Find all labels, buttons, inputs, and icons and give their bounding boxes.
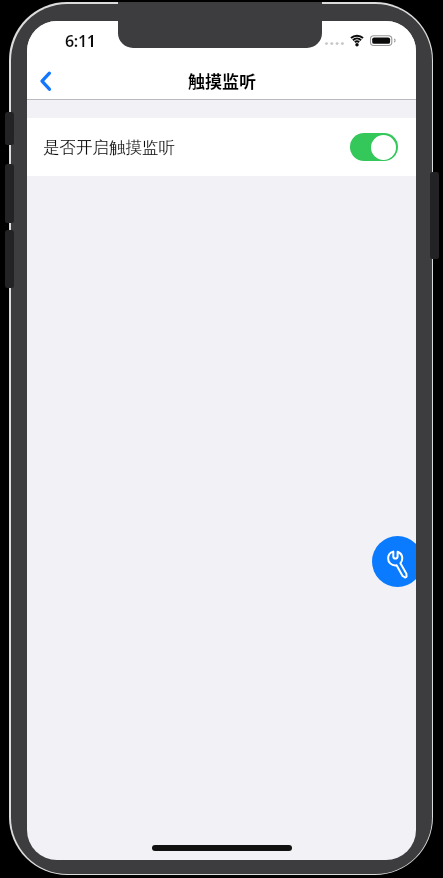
button[interactable] — [30, 65, 64, 99]
staticText: 6:11 — [65, 30, 96, 52]
staticText: 触摸监听 — [188, 68, 256, 93]
staticText: 是否开启触摸监听 — [43, 137, 175, 158]
button[interactable] — [372, 536, 416, 587]
button[interactable]: 是否开启触摸监听 — [27, 118, 416, 176]
button[interactable] — [350, 133, 398, 161]
